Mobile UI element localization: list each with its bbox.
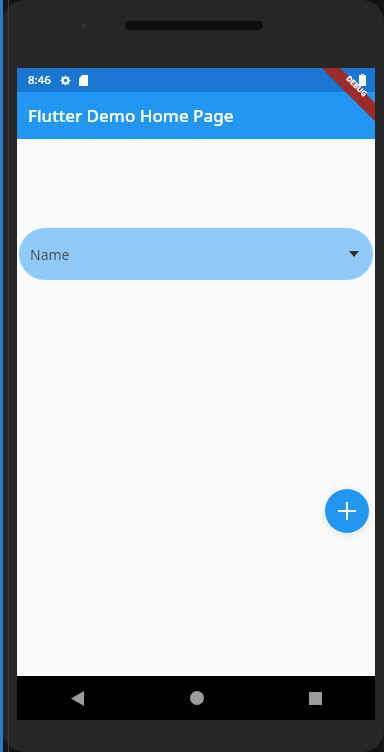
button[interactable]: Add	[325, 489, 369, 533]
staticText: Flutter Demo Home Page	[28, 104, 234, 127]
staticText: Name	[30, 245, 70, 264]
button[interactable]: Back	[17, 676, 137, 720]
button[interactable]: Name	[19, 228, 373, 280]
button[interactable]: Home	[137, 676, 256, 720]
staticText: DEBUG	[344, 73, 370, 99]
staticText: 8:46	[28, 72, 51, 88]
button[interactable]: Recent apps	[256, 676, 375, 720]
